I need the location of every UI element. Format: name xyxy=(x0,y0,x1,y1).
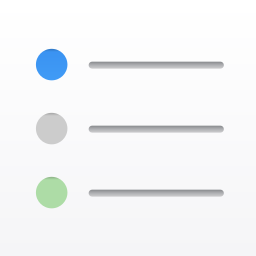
button[interactable]: First item xyxy=(36,49,224,80)
button[interactable]: Second item xyxy=(36,113,224,144)
button[interactable]: Third item xyxy=(36,177,224,208)
